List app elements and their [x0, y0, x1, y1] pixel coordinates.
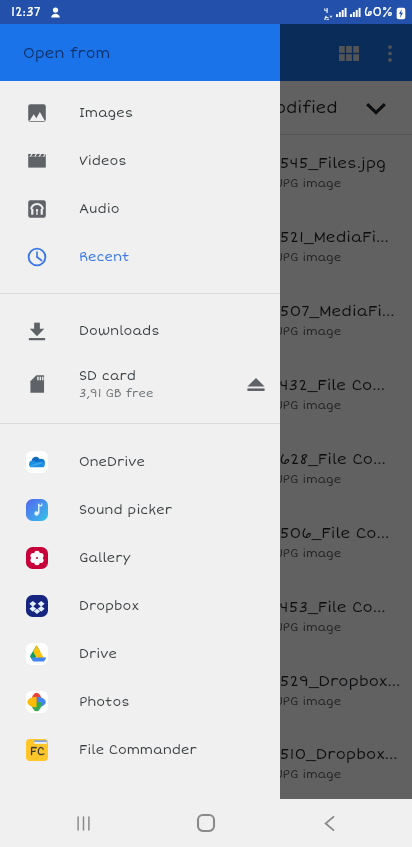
staticText: Dropbox — [79, 598, 139, 614]
staticText: Screenshot_20230910_1225301_545_Files.jp… — [16, 154, 387, 172]
staticText: Screenshot_20230910_1225301_529_Dropbox… — [16, 672, 401, 690]
staticText: 10 September 2023, 12:25:30 • 2,450 MB •… — [16, 472, 342, 486]
staticText: Downloads — [79, 323, 160, 339]
staticText: Photos — [79, 694, 130, 710]
button[interactable]: SD card — [0, 355, 280, 413]
staticText: Drive — [79, 646, 117, 662]
button[interactable]: More options — [369, 29, 410, 77]
staticText: Modified — [262, 98, 338, 118]
button[interactable]: Images — [0, 89, 280, 137]
button[interactable]: OneDrive — [0, 438, 280, 486]
button[interactable]: Drive — [0, 630, 280, 678]
staticText: Screenshot_20230910_1225301_453_File Co… — [16, 598, 386, 616]
button[interactable]: Dropbox — [0, 582, 280, 630]
staticText: Gallery — [79, 550, 131, 566]
button[interactable]: Downloads — [0, 307, 280, 355]
staticText: Screenshot_20230910_1225301_510_Dropbox… — [16, 745, 398, 763]
button[interactable]: Recents — [43, 799, 123, 847]
staticText: 10 September 2023, 12:25:30 • 2,450 MB •… — [16, 767, 342, 781]
staticText: Open from — [23, 44, 111, 62]
button[interactable]: Recent — [0, 233, 280, 281]
button[interactable]: Grid view — [328, 29, 369, 77]
staticText: Screenshot_20230910_1225301_521_MediaFi… — [16, 228, 389, 246]
staticText: 10 September 2023, 12:25:30 • 2,450 MB •… — [16, 250, 342, 264]
staticText: 12:37 — [11, 5, 41, 20]
button[interactable]: Screenshot_20230910_1225301_453_File Co… — [0, 579, 412, 653]
button[interactable]: Screenshot_20230910_1225301_510_Dropbox… — [0, 727, 412, 799]
staticText: Audio — [79, 201, 120, 217]
staticText: 60% — [364, 5, 393, 20]
button[interactable]: Screenshot_20230910_1225301_432_File Co… — [0, 357, 412, 431]
staticText: 3,91 GB free — [79, 386, 154, 400]
staticText: Videos — [79, 153, 127, 169]
button[interactable]: Videos — [0, 137, 280, 185]
staticText: 10 September 2023, 12:25:30 • 2,450 MB •… — [16, 620, 342, 634]
button[interactable]: Sound picker — [0, 486, 280, 534]
button[interactable]: Photos — [0, 678, 280, 726]
staticText: File Commander — [79, 742, 197, 758]
staticText: 4G — [324, 6, 333, 20]
staticText: Screenshot_20230910_1225301_432_File Co… — [16, 376, 385, 394]
staticText: 10 September 2023, 12:25:30 • 2,450 MB •… — [16, 176, 342, 190]
staticText: 10 September 2023, 12:25:30 • 2,450 MB •… — [16, 546, 342, 560]
staticText: FC — [30, 745, 45, 759]
button[interactable]: Screenshot_20230910_1225301_529_Dropbox… — [0, 653, 412, 727]
button[interactable]: FC — [0, 726, 280, 774]
button[interactable]: Home — [166, 799, 246, 847]
button[interactable]: Back — [289, 799, 369, 847]
button[interactable]: Screenshot_20230910_1225301_628_File Co… — [0, 431, 412, 505]
button[interactable]: Eject SD card — [232, 360, 280, 408]
staticText: Recent — [79, 249, 130, 265]
button[interactable]: Screenshot_20230910_1225301_506_File Co… — [0, 505, 412, 579]
staticText: Images — [79, 105, 134, 121]
staticText: 10 September 2023, 12:25:30 • 2,450 MB •… — [16, 398, 342, 412]
staticText: OneDrive — [79, 454, 146, 470]
staticText: 10 September 2023, 12:25:30 • 2,450 MB •… — [16, 324, 342, 338]
staticText: Sound picker — [79, 502, 173, 518]
staticText: Screenshot_20230910_1225301_628_File Co… — [16, 450, 386, 468]
button[interactable]: Audio — [0, 185, 280, 233]
button[interactable]: Gallery — [0, 534, 280, 582]
staticText: Open from — [23, 44, 111, 62]
staticText: 10 September 2023, 12:25:30 • 2,450 MB •… — [16, 694, 342, 708]
button[interactable]: Screenshot_20230910_1225301_545_Files.jp… — [0, 135, 412, 209]
staticText: Screenshot_20230910_1225301_506_File Co… — [16, 524, 390, 542]
button[interactable]: Screenshot_20230910_1225301_507_MediaFi… — [0, 283, 412, 357]
button[interactable]: Screenshot_20230910_1225301_521_MediaFi… — [0, 209, 412, 283]
staticText: Screenshot_20230910_1225301_507_MediaFi… — [16, 302, 395, 320]
staticText: SD card — [79, 368, 136, 384]
